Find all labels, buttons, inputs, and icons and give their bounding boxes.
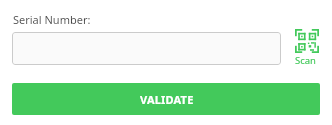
staticText: Serial Number: [13, 12, 91, 27]
button[interactable] [12, 32, 281, 65]
staticText: Scan [295, 54, 316, 67]
button[interactable]: VALIDATE [12, 83, 320, 115]
staticText: VALIDATE [140, 92, 194, 107]
button[interactable]: Scan [291, 26, 322, 68]
